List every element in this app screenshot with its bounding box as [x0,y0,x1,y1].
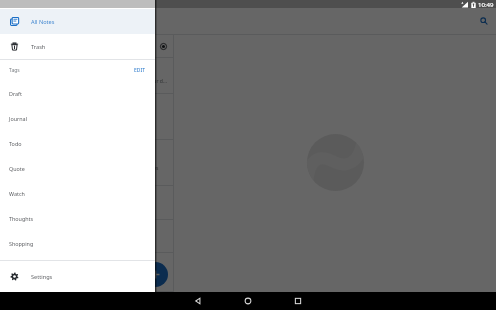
button[interactable]: Watch later [0,186,173,220]
button[interactable]: Todo [0,131,155,156]
staticText: Sync with the design team about the new … [6,274,143,281]
button[interactable]: Shopping list for Saturday [0,94,173,140]
button[interactable]: Recent apps [273,292,323,310]
staticText: Journal [9,115,28,122]
button[interactable]: New note [143,262,168,287]
staticText: Draft [9,90,22,97]
staticText: Ideas for the weekend getaway trip [6,67,99,75]
button[interactable]: Settings [0,261,155,292]
button[interactable]: Watch [0,181,155,206]
staticText: Quote [9,165,25,172]
button[interactable]: Home [223,292,273,310]
staticText: Settings [31,273,53,281]
button[interactable]: Journal entry — Tuesday [0,140,173,186]
staticText: 10:49 [478,0,494,8]
button[interactable]: Back [173,292,223,310]
staticText: bread, milk, eggs, coffee, rice, olive o… [6,119,134,126]
staticText: Watch later [6,194,36,202]
staticText: Tags [9,67,20,74]
button[interactable]: Search [476,13,492,29]
staticText: Be yourself; everyone else is already ta… [6,238,143,245]
staticText: Thoughts [9,215,34,222]
button[interactable]: Thoughts [0,206,155,231]
staticText: All Notes [31,18,55,26]
button[interactable]: Ideas for the weekend getaway trip [0,58,173,94]
button[interactable]: Quote of the day [0,220,173,253]
button[interactable]: Meeting notes [0,253,173,292]
staticText: Trash [31,43,46,51]
staticText: Todo [9,140,22,147]
button[interactable]: Trash [0,34,155,59]
button[interactable]: Quote [0,156,155,181]
button[interactable]: Draft [0,81,155,106]
button[interactable]: All Notes [0,9,155,34]
staticText: EDIT [134,67,146,74]
button[interactable]: Filter notes [156,39,170,53]
staticText: Today I walked to the park and wrote for… [6,165,159,172]
staticText: Watch [9,190,25,197]
staticText: A note-taking app that keeps everything … [6,78,167,85]
button[interactable]: EDIT [132,65,148,76]
button[interactable]: Shopping [0,231,155,256]
staticText: Shopping [9,240,34,247]
button[interactable]: Journal [0,106,155,131]
